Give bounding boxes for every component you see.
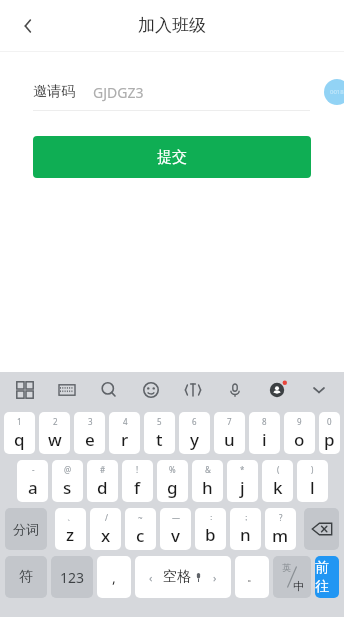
button[interactable]: Voice input [220, 375, 250, 405]
button[interactable]: & [192, 460, 223, 502]
staticText: l [310, 476, 315, 499]
button[interactable]: 。 [235, 556, 269, 598]
staticText: d [97, 476, 108, 499]
button[interactable]: Backspace [304, 508, 339, 550]
button[interactable]: 0 [319, 412, 340, 454]
staticText: a [28, 476, 38, 499]
button[interactable]: Apps [10, 375, 40, 405]
button[interactable]: Profile [262, 375, 292, 405]
button[interactable]: Search [94, 375, 124, 405]
button[interactable]: Hide keyboard [304, 375, 334, 405]
button[interactable]: 4 [109, 412, 140, 454]
button[interactable]: 提交 [33, 136, 311, 178]
button[interactable]: 符 [5, 556, 47, 598]
staticText: 123 [60, 568, 85, 587]
staticText: 5 [157, 416, 162, 427]
button[interactable]: Keyboard [52, 375, 82, 405]
staticText: 邀请码 [33, 83, 75, 101]
staticText: 空格 [163, 568, 191, 586]
staticText: 0018 [330, 88, 344, 96]
button[interactable]: , [97, 556, 131, 598]
staticText: & [205, 464, 211, 475]
staticText: ‹ [149, 570, 153, 585]
button[interactable]: 分词 [5, 508, 47, 550]
staticText: h [202, 476, 213, 499]
button[interactable]: 英 [273, 556, 311, 598]
staticText: ( [277, 464, 280, 475]
staticText: q [14, 428, 25, 451]
staticText: * [240, 464, 245, 475]
staticText: u [224, 428, 235, 451]
staticText: , [112, 568, 116, 587]
staticText: r [121, 428, 129, 451]
button[interactable]: 123 [51, 556, 93, 598]
staticText: GJDGZ3 [93, 83, 144, 102]
staticText: 0 [327, 416, 332, 427]
staticText: 8 [262, 416, 267, 427]
staticText: 7 [227, 416, 232, 427]
staticText: - [32, 464, 35, 475]
button[interactable]: 前往 [315, 556, 339, 598]
staticText: 加入班级 [138, 15, 206, 36]
button[interactable]: Back [8, 6, 48, 46]
staticText: z [66, 523, 75, 546]
staticText: › [213, 570, 217, 585]
staticText: k [273, 476, 283, 499]
staticText: v [171, 524, 180, 547]
staticText: % [169, 464, 176, 475]
button[interactable]: Emoji [136, 375, 166, 405]
button[interactable]: / [90, 508, 121, 550]
staticText: y [190, 428, 199, 451]
button[interactable]: — [160, 508, 191, 550]
button[interactable]: 3 [74, 412, 105, 454]
staticText: / [105, 512, 108, 523]
button[interactable]: ； [230, 508, 261, 550]
button[interactable]: # [87, 460, 118, 502]
staticText: 6 [192, 416, 197, 427]
button[interactable]: - [17, 460, 48, 502]
button[interactable]: 9 [284, 412, 315, 454]
staticText: c [136, 524, 145, 547]
button[interactable]: 7 [214, 412, 245, 454]
button[interactable]: @ [52, 460, 83, 502]
staticText: 9 [297, 416, 302, 427]
staticText: f [134, 476, 141, 499]
button[interactable]: 1 [4, 412, 35, 454]
button[interactable]: Avatar [324, 79, 344, 105]
button[interactable]: 5 [144, 412, 175, 454]
button[interactable]: ! [122, 460, 153, 502]
button[interactable]: % [157, 460, 188, 502]
button[interactable]: 、 [55, 508, 86, 550]
button[interactable]: Text tools [178, 375, 208, 405]
button[interactable]: ： [195, 508, 226, 550]
staticText: p [324, 428, 335, 451]
staticText: 3 [88, 416, 93, 427]
staticText: w [48, 428, 62, 451]
staticText: e [85, 428, 95, 451]
staticText: ) [311, 464, 314, 475]
staticText: m [272, 524, 289, 547]
staticText: 符 [19, 568, 33, 586]
staticText: 。 [247, 570, 258, 584]
staticText: 1 [17, 416, 22, 427]
button[interactable]: GJDGZ3 [93, 83, 324, 102]
button[interactable]: ? [265, 508, 296, 550]
staticText: b [205, 523, 216, 546]
staticText: j [240, 476, 245, 499]
button[interactable]: ( [262, 460, 293, 502]
button[interactable]: * [227, 460, 258, 502]
button[interactable]: 8 [249, 412, 280, 454]
staticText: 4 [123, 416, 128, 427]
staticText: ； [242, 512, 250, 522]
staticText: n [240, 523, 251, 546]
staticText: # [100, 464, 106, 475]
button[interactable]: ~ [125, 508, 156, 550]
button[interactable]: 2 [39, 412, 70, 454]
button[interactable]: 6 [179, 412, 210, 454]
staticText: t [156, 428, 163, 451]
staticText: i [262, 428, 267, 451]
button[interactable]: ) [297, 460, 328, 502]
staticText: g [167, 476, 178, 499]
button[interactable]: ‹ [135, 556, 231, 598]
staticText: 英 [282, 562, 291, 573]
